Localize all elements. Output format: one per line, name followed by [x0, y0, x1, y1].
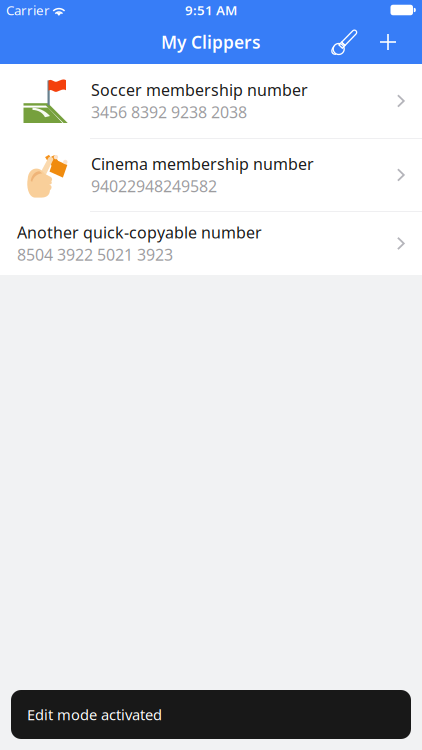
staticText: Cinema membership number — [91, 153, 314, 174]
staticText: My Clippers — [161, 30, 261, 53]
staticText: 9:51 AM — [185, 1, 237, 19]
button[interactable]: Soccer membership number — [0, 64, 422, 138]
button[interactable]: Cinema membership number — [0, 139, 422, 211]
staticText: 3456 8392 9238 2038 — [91, 101, 247, 123]
staticText: Carrier — [6, 1, 50, 19]
button[interactable]: Another quick-copyable number — [0, 212, 422, 275]
staticText: 94022948249582 — [91, 175, 217, 197]
staticText: Another quick-copyable number — [17, 222, 262, 243]
staticText: Edit mode activated — [27, 705, 162, 724]
button[interactable]: Edit — [322, 20, 366, 64]
staticText: Soccer membership number — [91, 79, 308, 100]
staticText: 8504 3922 5021 3923 — [17, 244, 173, 265]
button[interactable]: Add new clipper — [366, 20, 410, 64]
